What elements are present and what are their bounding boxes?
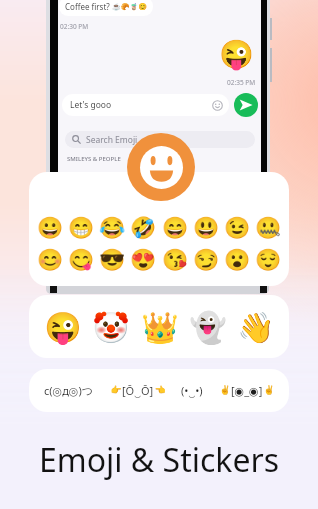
button[interactable]: 🤣 [130,216,156,241]
button[interactable]: c(◎д◎)つ [44,383,94,398]
staticText: ✌️ [219,385,231,396]
button[interactable]: Let's gooo [62,94,229,116]
staticText: 👈 [154,385,166,396]
button[interactable]: (•‿•) [181,383,203,398]
staticText: 😋 [68,248,94,273]
button[interactable]: 👑 [138,305,181,349]
staticText: 😘 [162,248,188,273]
staticText: Search Emoji [86,134,138,146]
staticText: 😁 [68,216,94,241]
button[interactable]: 🤐 [255,216,281,241]
button[interactable]: 🤡 [89,305,132,349]
staticText: 😜 [44,310,82,345]
button[interactable]: 😏 [193,248,219,273]
staticText: 😌 [255,248,281,273]
staticText: ✌️ [263,385,275,396]
button[interactable]: 😜 [41,305,84,349]
staticText: 😄 [162,216,188,241]
staticText: 02:30 PM [60,22,89,31]
staticText: SMILEYS & PEOPLE [67,155,121,163]
staticText: 😊 [37,248,63,273]
staticText: 👋 [237,310,275,345]
button[interactable]: 😮 [224,248,250,273]
staticText: 👉 [110,385,122,396]
button[interactable]: 😎 [99,248,125,273]
button[interactable]: 😘 [162,248,188,273]
staticText: 😮 [224,248,250,273]
button[interactable]: 😄 [162,216,188,241]
staticText: 👑 [141,310,179,345]
staticText: 😃 [193,216,219,241]
staticText: 😀 [37,216,63,241]
staticText: (•‿•) [181,383,203,398]
staticText: 😜 [219,38,254,71]
staticText: 😏 [193,248,219,273]
staticText: 👻 [189,310,227,345]
button[interactable]: 😁 [68,216,94,241]
button[interactable]: 😃 [193,216,219,241]
button[interactable]: Search Emoji [65,131,255,148]
staticText: 😉 [224,216,250,241]
button[interactable]: 😌 [255,248,281,273]
button[interactable]: Coffee first? [59,0,153,16]
button[interactable]: 😋 [68,248,94,273]
staticText: [◉_◉] [231,383,263,398]
button[interactable]: 😊 [37,248,63,273]
staticText: 🤡 [92,310,130,345]
staticText: 😎 [99,248,125,273]
button[interactable]: Send [234,93,258,117]
staticText: Coffee first? [65,1,112,12]
button[interactable]: 👉 [110,383,166,398]
staticText: ☕🥐🧋😊 [112,3,147,11]
staticText: Let's gooo [70,99,212,111]
staticText: 😂 [99,216,125,241]
staticText: [Ŏ‿Ŏ] [122,383,154,398]
staticText: 😍 [130,248,156,273]
button[interactable]: 👻 [186,305,229,349]
button[interactable]: 😀 [37,216,63,241]
button[interactable]: 😉 [224,216,250,241]
button[interactable]: 😂 [99,216,125,241]
staticText: c(◎д◎)つ [44,383,94,398]
staticText: 🤐 [255,216,281,241]
staticText: Emoji & Stickers [0,438,318,482]
staticText: 🤣 [130,216,156,241]
staticText: 02:35 PM [227,78,256,87]
button[interactable]: 👋 [234,305,277,349]
button[interactable]: ✌️ [219,383,275,398]
button[interactable]: Emoji keyboard [127,133,195,201]
button[interactable]: 😍 [130,248,156,273]
